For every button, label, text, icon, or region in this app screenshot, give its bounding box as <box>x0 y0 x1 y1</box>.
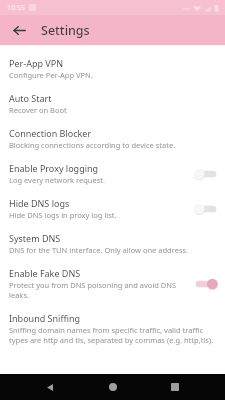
staticText: Connection Blocker <box>9 127 92 139</box>
staticText: Enable Proxy logging <box>9 162 99 174</box>
staticText: Log every network request. <box>9 175 106 185</box>
button[interactable]: Toggle off <box>193 201 219 217</box>
staticText: System DNS <box>9 232 61 244</box>
staticText: Recover on Boot <box>9 105 67 115</box>
button[interactable]: Auto Start <box>0 86 225 121</box>
staticText: Settings <box>41 22 90 39</box>
staticText: 10:55 <box>7 3 25 13</box>
button[interactable]: Per-App VPN <box>0 51 225 86</box>
button[interactable]: Connection Blocker <box>0 121 225 156</box>
button[interactable]: System DNS <box>0 226 225 261</box>
button[interactable]: Home <box>100 374 126 400</box>
button[interactable]: Toggle off <box>193 166 219 182</box>
staticText: Auto Start <box>9 92 52 104</box>
button[interactable]: Hide DNS logs <box>0 191 225 226</box>
button[interactable]: Recent apps <box>162 374 188 400</box>
button[interactable]: Toggle on <box>193 276 219 292</box>
button[interactable]: Back <box>7 18 31 42</box>
staticText: Inbound Sniffing <box>9 312 81 324</box>
button[interactable]: Back <box>37 374 63 400</box>
staticText: Per-App VPN <box>9 57 63 69</box>
staticText: DNS for the TUN interface. Only allow on… <box>9 245 189 255</box>
staticText: Protect you from DNS poisoning and avoid… <box>9 280 189 300</box>
button[interactable]: Enable Proxy logging <box>0 156 225 191</box>
button[interactable]: Inbound Sniffing <box>0 306 225 351</box>
staticText: Hide DNS logs in proxy log list. <box>9 210 117 220</box>
button[interactable]: Enable Fake DNS <box>0 261 225 306</box>
staticText: Configure Per-App VPN. <box>9 70 93 80</box>
staticText: Blocking connections according to device… <box>9 140 176 150</box>
staticText: Sniffing domain names from specific traf… <box>9 325 219 345</box>
staticText: Enable Fake DNS <box>9 267 81 279</box>
staticText: Hide DNS logs <box>9 197 70 209</box>
